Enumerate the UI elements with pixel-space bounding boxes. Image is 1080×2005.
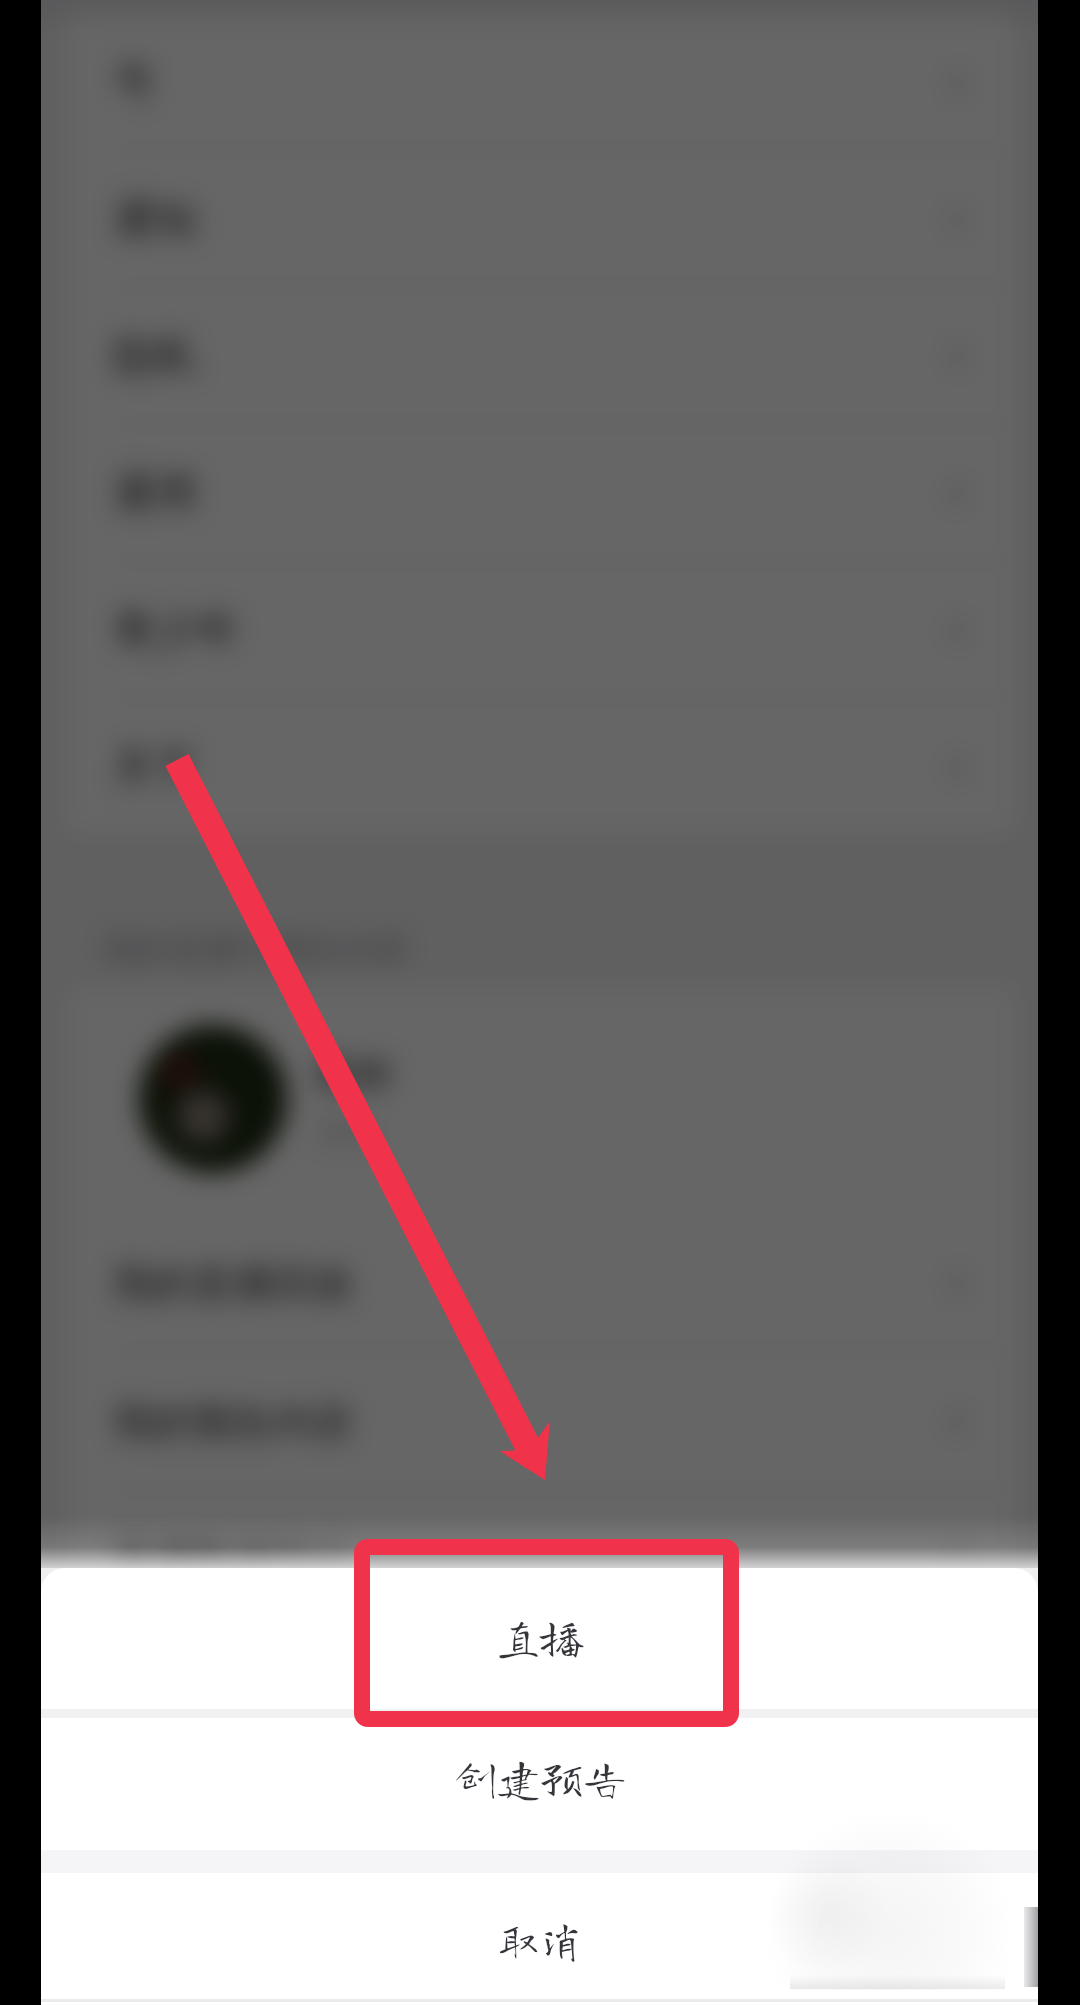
staticText: 关于 [113, 741, 197, 794]
button[interactable]: 我的预告内容 [65, 1352, 1017, 1491]
staticText: 隐私 [113, 330, 197, 383]
staticText: 我的预告内容 [113, 1397, 353, 1447]
staticText: 我的直播回放 [113, 1258, 353, 1308]
staticText: 通知 [113, 193, 197, 246]
button[interactable]: 直播数据中心 [65, 1491, 1017, 1602]
staticText: 号 [113, 56, 155, 109]
staticText: 我的直播与预告内容 [103, 928, 409, 971]
button[interactable]: 隐私 [65, 288, 1017, 425]
staticText: 昵称 [317, 1050, 393, 1098]
staticText: 直播数据中心 [113, 1533, 353, 1583]
staticText: 青少年 [113, 604, 239, 657]
button[interactable]: 创建预告 [41, 1718, 1038, 1850]
staticText: 取消 [497, 1918, 583, 1961]
button[interactable]: 关于 [65, 699, 1017, 836]
staticText: 创建预告 [454, 1756, 626, 1799]
other: Highlight annotation [0, 0, 1080, 2005]
button[interactable]: 直播 [41, 1568, 1038, 1709]
button[interactable]: 取消 [41, 1873, 1038, 2005]
staticText: 直播 [497, 1615, 583, 1658]
button[interactable]: 我的直播回放 [65, 1213, 1017, 1352]
button[interactable]: 通知 [65, 151, 1017, 288]
staticText: 通用 [113, 467, 197, 520]
staticText: 主页 [317, 1116, 369, 1149]
button[interactable]: 青少年 [65, 562, 1017, 699]
button[interactable]: 通用 [65, 425, 1017, 562]
